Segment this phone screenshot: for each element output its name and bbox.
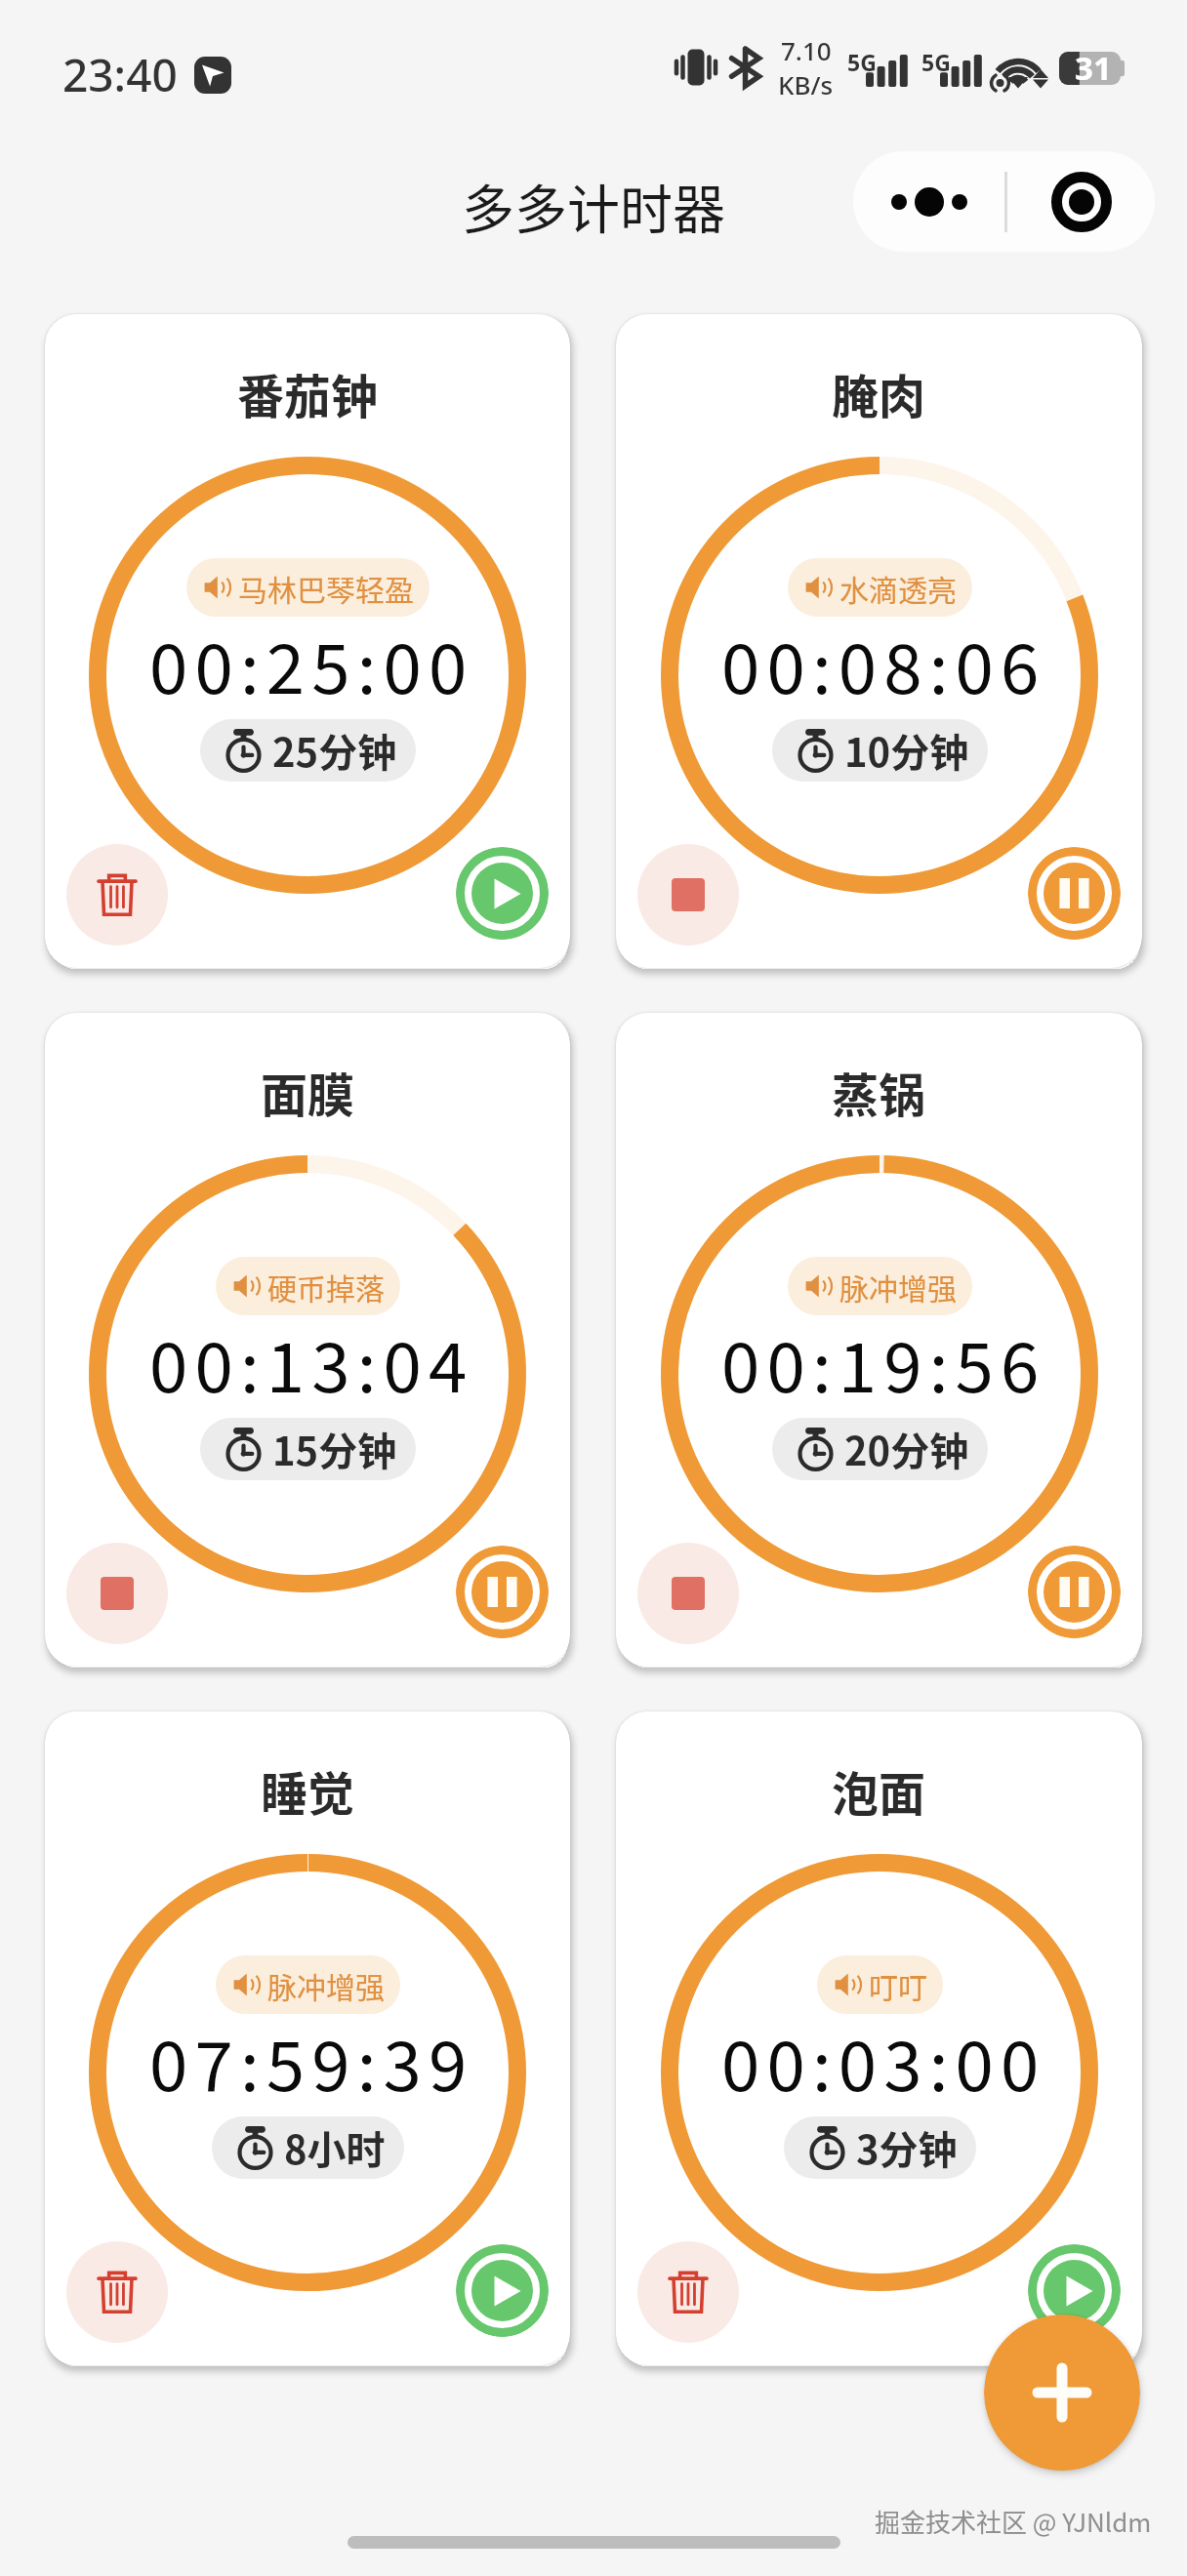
staticText: 5G: [847, 47, 877, 77]
staticText: 7.10: [781, 33, 832, 67]
button[interactable]: 睡觉: [45, 1711, 570, 2365]
staticText: 脉冲增强: [267, 1964, 385, 2006]
staticText: 番茄钟: [237, 359, 379, 427]
button[interactable]: Delete: [66, 844, 168, 946]
button[interactable]: Delete: [66, 2241, 168, 2343]
staticText: 面膜: [261, 1058, 355, 1126]
button[interactable]: Start: [1028, 2244, 1121, 2337]
button[interactable]: Stop: [637, 1543, 739, 1644]
button[interactable]: Start: [456, 847, 549, 940]
button[interactable]: More options: [853, 151, 1004, 252]
button[interactable]: 腌肉: [616, 314, 1142, 968]
staticText: 5G: [921, 47, 951, 77]
staticText: 水滴透亮: [839, 567, 957, 609]
button[interactable]: Close mini program: [1007, 151, 1155, 252]
staticText: 00:25:00: [149, 615, 474, 724]
staticText: 07:59:39: [149, 2012, 474, 2121]
staticText: 10分钟: [844, 722, 969, 779]
button[interactable]: 面膜: [45, 1013, 570, 1667]
staticText: 23:40: [62, 44, 178, 105]
button[interactable]: 番茄钟: [45, 314, 570, 968]
staticText: 00:08:06: [721, 615, 1046, 724]
staticText: 00:19:56: [721, 1313, 1046, 1423]
staticText: 蒸锅: [832, 1058, 926, 1126]
button[interactable]: Delete: [637, 2241, 739, 2343]
staticText: 8小时: [284, 2119, 386, 2176]
staticText: 睡觉: [261, 1756, 355, 1825]
staticText: 3分钟: [856, 2119, 958, 2176]
staticText: 15分钟: [272, 1421, 397, 1477]
staticText: 泡面: [832, 1756, 926, 1825]
button[interactable]: Stop: [66, 1543, 168, 1644]
staticText: 00:03:00: [721, 2012, 1046, 2121]
staticText: 20分钟: [844, 1421, 969, 1477]
button[interactable]: Pause: [456, 1546, 549, 1638]
staticText: 叮叮: [869, 1964, 927, 2006]
staticText: 硬币掉落: [267, 1266, 385, 1308]
staticText: 多多计时器: [462, 168, 725, 244]
staticText: 掘金技术社区 @ YJNldm: [875, 2503, 1152, 2540]
staticText: 腌肉: [832, 359, 926, 427]
button[interactable]: 蒸锅: [616, 1013, 1142, 1667]
staticText: 25分钟: [272, 722, 397, 779]
button[interactable]: Add timer: [984, 2314, 1140, 2471]
button[interactable]: Stop: [637, 844, 739, 946]
staticText: 31: [1075, 46, 1112, 90]
staticText: 00:13:04: [149, 1313, 474, 1423]
button[interactable]: Pause: [1028, 1546, 1121, 1638]
staticText: 马林巴琴轻盈: [238, 567, 414, 609]
staticText: KB/s: [778, 67, 834, 101]
button[interactable]: 泡面: [616, 1711, 1142, 2365]
button[interactable]: Pause: [1028, 847, 1121, 940]
staticText: 脉冲增强: [839, 1266, 957, 1308]
button[interactable]: Start: [456, 2244, 549, 2337]
